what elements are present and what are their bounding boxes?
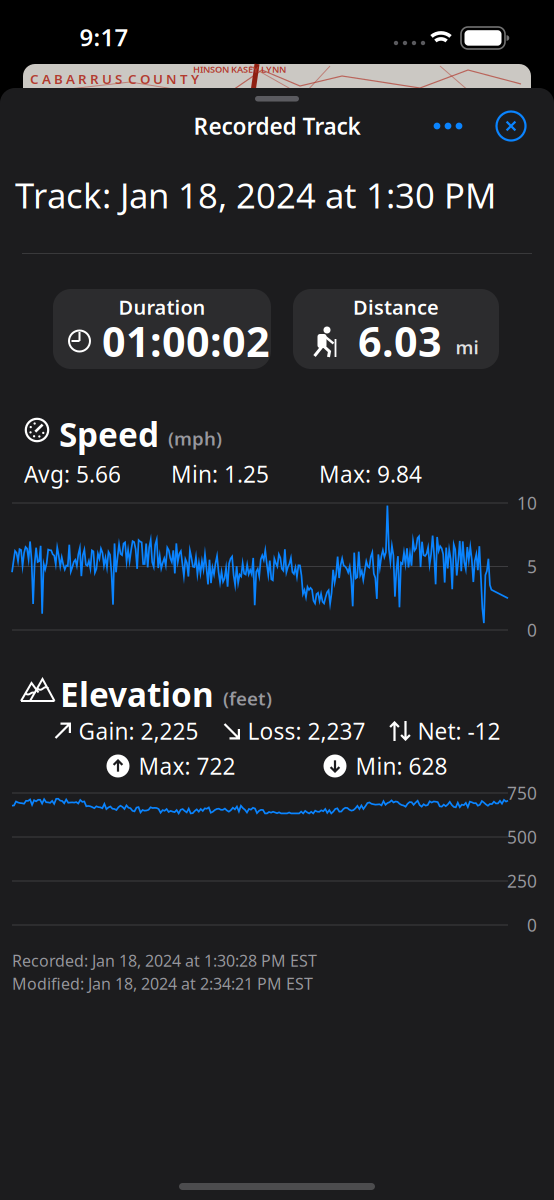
staticText: Recorded Track	[193, 111, 360, 141]
staticText: Duration	[118, 294, 205, 320]
staticText: C A B A R R U S C O U N T Y	[30, 70, 199, 88]
staticText: Gain: 2,225	[78, 716, 198, 746]
staticText: Min: 628	[355, 751, 447, 781]
staticText: Min: 1.25	[171, 459, 269, 489]
staticText: Max: 722	[138, 751, 235, 781]
staticText: 5	[527, 555, 537, 578]
staticText: Distance	[353, 294, 439, 320]
staticText: 10	[517, 491, 537, 514]
staticText: 250	[507, 869, 537, 892]
staticText: Track: Jan 18, 2024 at 1:30 PM	[15, 172, 496, 218]
button[interactable]	[496, 111, 526, 141]
staticText: Speed	[59, 412, 159, 456]
staticText: 0	[527, 913, 537, 936]
staticText: Modified: Jan 18, 2024 at 2:34:21 PM EST	[12, 973, 313, 994]
staticText: 6.03	[358, 314, 442, 368]
staticText: mi	[455, 335, 478, 359]
staticText: (mph)	[168, 426, 222, 450]
staticText: HINSON KASEY LYNN	[193, 63, 286, 75]
staticText: 0	[527, 618, 537, 641]
staticText: Elevation	[60, 672, 214, 716]
staticText: Recorded: Jan 18, 2024 at 1:30:28 PM EST	[12, 950, 317, 971]
staticText: Avg: 5.66	[24, 459, 121, 489]
staticText: Net: -12	[417, 716, 500, 746]
staticText: 01:00:02	[102, 314, 270, 368]
button[interactable]	[430, 111, 466, 141]
staticText: 500	[507, 825, 537, 848]
staticText: Loss: 2,237	[247, 716, 365, 746]
staticText: Max: 9.84	[319, 459, 422, 489]
staticText: 9:17	[79, 21, 128, 53]
staticText: (feet)	[223, 686, 272, 710]
staticText: 750	[507, 781, 537, 804]
